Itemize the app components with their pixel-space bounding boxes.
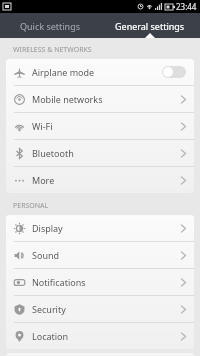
button[interactable]: More [6,167,194,193]
button[interactable]: Notifications [6,269,194,295]
button[interactable]: Wi-Fi [6,113,194,139]
button[interactable]: Sound [6,242,194,268]
button[interactable]: Mobile networks [6,86,194,112]
button[interactable]: Location [6,323,194,349]
staticText: Quick settings [20,20,80,32]
button[interactable]: Bluetooth [6,140,194,166]
button[interactable]: Display [6,215,194,241]
staticText: Security [32,303,66,315]
staticText: PERSONAL [13,201,49,211]
staticText: 23:44 [176,1,197,12]
button[interactable]: General settings [100,13,200,38]
staticText: Notifications [32,276,86,288]
staticText: WIRELESS & NETWORKS [13,45,92,55]
button[interactable]: Quick settings [0,13,100,38]
staticText: Airplane mode [32,66,95,78]
staticText: General settings [115,20,185,32]
staticText: More [32,174,55,186]
other: Airplane mode toggle [162,66,186,78]
staticText: Location [32,330,69,342]
staticText: Bluetooth [32,147,74,159]
staticText: Mobile networks [32,93,103,105]
staticText: Sound [32,249,60,261]
staticText: Display [32,222,63,234]
button[interactable]: Security [6,296,194,322]
button[interactable]: Airplane mode [6,59,194,85]
staticText: Wi-Fi [32,120,53,132]
